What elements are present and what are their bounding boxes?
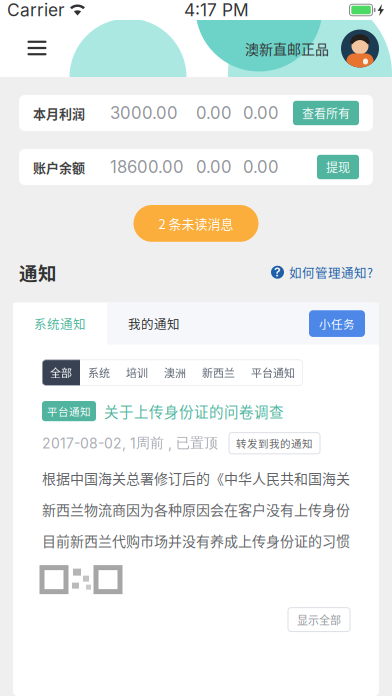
- staticText: 目前新西兰代购市场并没有养成上传身份证的习惯: [42, 530, 350, 551]
- staticText: 本月利润: [33, 104, 85, 122]
- button[interactable]: 系统通知: [13, 303, 107, 345]
- staticText: 平台通知: [251, 365, 295, 380]
- button[interactable]: 小任务: [309, 310, 365, 337]
- button[interactable]: 显示全部: [288, 608, 350, 631]
- staticText: 18600.00: [110, 157, 184, 177]
- button[interactable]: 新西兰: [194, 360, 243, 386]
- staticText: 小任务: [319, 315, 355, 332]
- staticText: 账户余额: [33, 158, 85, 176]
- button[interactable]: 培训: [118, 360, 156, 386]
- staticText: 澳洲: [164, 365, 186, 380]
- staticText: 关于上传身份证的问卷调查: [104, 401, 284, 422]
- staticText: 通知: [19, 259, 57, 286]
- staticText: 4:17 PM: [184, 0, 249, 20]
- button[interactable]: ?: [271, 263, 373, 281]
- staticText: 新西兰物流商因为各种原因会在客户没有上传身份: [42, 499, 350, 519]
- staticText: 3000.00: [110, 103, 178, 123]
- staticText: 新西兰: [202, 365, 235, 380]
- button[interactable]: 全部: [42, 360, 80, 386]
- button[interactable]: 转发到我的通知: [229, 433, 320, 454]
- staticText: ?: [274, 265, 281, 279]
- staticText: 提现: [326, 158, 350, 176]
- staticText: 0.00: [243, 103, 279, 123]
- staticText: 全部: [50, 365, 72, 380]
- staticText: 0.00: [243, 157, 279, 177]
- staticText: 培训: [126, 365, 148, 380]
- staticText: 0.00: [196, 157, 232, 177]
- button[interactable]: 澳洲: [156, 360, 194, 386]
- button[interactable]: 我的通知: [107, 303, 201, 345]
- staticText: 2017-08-02, 1周前 , 已置顶: [42, 434, 218, 452]
- staticText: 转发到我的通知: [236, 436, 313, 451]
- staticText: 澳新直邮正品: [245, 38, 329, 59]
- button[interactable]: 2 条未读消息: [133, 205, 258, 242]
- button[interactable]: Menu: [14, 25, 60, 71]
- staticText: 0.00: [196, 103, 232, 123]
- staticText: 平台通知: [47, 403, 91, 419]
- staticText: 如何管理通知?: [289, 263, 373, 281]
- button[interactable]: 系统: [80, 360, 118, 386]
- button[interactable]: 平台通知: [42, 401, 350, 422]
- button[interactable]: 账户余额: [19, 149, 373, 185]
- staticText: 根据中国海关总署修订后的《中华人民共和国海关: [42, 468, 350, 488]
- staticText: 显示全部: [297, 612, 341, 627]
- staticText: 系统通知: [34, 315, 86, 333]
- staticText: 我的通知: [128, 315, 180, 333]
- button[interactable]: 平台通知: [243, 360, 303, 386]
- staticText: Carrier: [7, 0, 65, 20]
- staticText: 2 条未读消息: [158, 214, 233, 233]
- staticText: 系统: [88, 365, 110, 380]
- button[interactable]: 本月利润: [19, 95, 373, 131]
- staticText: 查看所有: [302, 104, 350, 122]
